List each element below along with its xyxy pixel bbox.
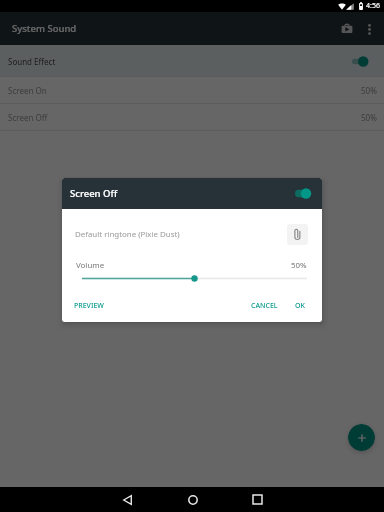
button[interactable]: PREVIEW	[74, 301, 104, 311]
staticText: System Sound	[12, 22, 77, 35]
button[interactable]: OK	[295, 301, 305, 311]
button[interactable]: Enable	[295, 187, 306, 200]
button[interactable]: Home	[160, 487, 225, 512]
staticText: 50%	[361, 85, 377, 96]
staticText: OK	[295, 301, 305, 311]
button[interactable]: Sound Effect	[0, 45, 384, 77]
button[interactable]: Screen On	[0, 77, 384, 104]
staticText: 50%	[361, 112, 377, 123]
staticText: Sound Effect	[8, 56, 56, 67]
staticText: PREVIEW	[74, 301, 104, 311]
staticText: 50%	[291, 260, 307, 271]
staticText: Screen Off	[8, 112, 48, 123]
button[interactable]: Back	[95, 487, 160, 512]
staticText: Screen Off	[70, 187, 118, 200]
button[interactable]: CANCEL	[251, 301, 278, 311]
button[interactable]: Attach	[287, 224, 308, 245]
staticText: Default ringtone (Pixie Dust)	[75, 229, 180, 240]
button[interactable]: Recents	[225, 487, 290, 512]
staticText: 4:56	[366, 1, 380, 11]
staticText: Screen On	[8, 85, 47, 96]
staticText: Volume	[76, 260, 105, 271]
button[interactable]: More options	[357, 15, 381, 43]
button[interactable]: Volume slider	[82, 272, 307, 285]
button[interactable]: Store	[335, 14, 359, 44]
button[interactable]: Screen Off	[0, 104, 384, 131]
button[interactable]: Default ringtone (Pixie Dust)	[62, 219, 322, 250]
button[interactable]: Add	[348, 424, 375, 451]
staticText: CANCEL	[251, 301, 278, 311]
